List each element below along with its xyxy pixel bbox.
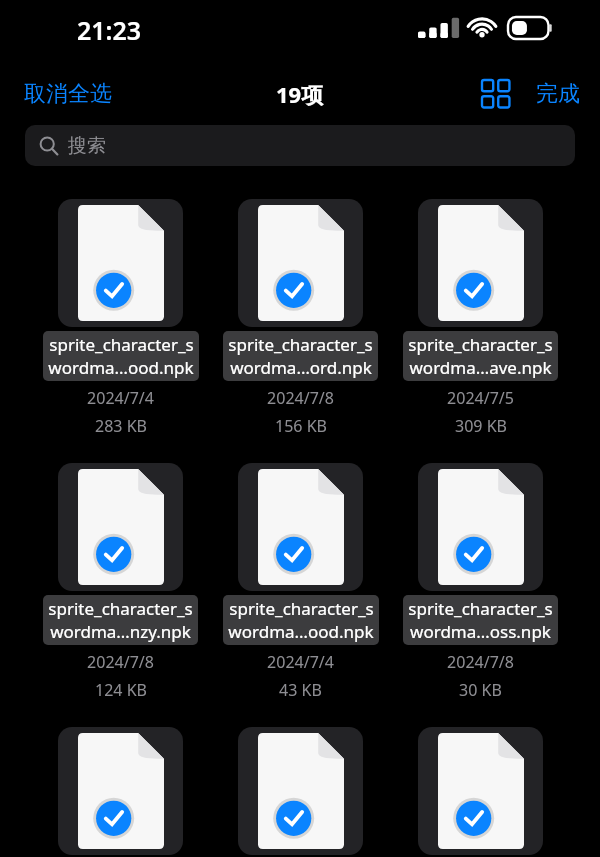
staticText: sprite_character_s xyxy=(48,597,193,620)
staticText: wordma…ood.npk xyxy=(228,620,374,643)
staticText: sprite_character_s xyxy=(49,333,194,356)
staticText: 21:23 xyxy=(77,13,142,47)
staticText: sprite_character_s xyxy=(408,597,553,620)
button[interactable]: 取消全选 xyxy=(14,74,122,114)
button[interactable]: Grid view xyxy=(476,74,516,114)
button[interactable]: 完成 xyxy=(530,74,586,114)
button[interactable]: sprite_character_s xyxy=(36,727,205,857)
button[interactable]: sprite_character_s xyxy=(396,727,565,857)
button[interactable]: sprite_character_s xyxy=(396,199,565,437)
staticText: 取消全选 xyxy=(24,80,112,108)
staticText: 完成 xyxy=(536,80,580,108)
button[interactable]: sprite_character_s xyxy=(36,463,205,701)
staticText: 43 KB xyxy=(279,679,322,701)
staticText: 124 KB xyxy=(95,679,147,701)
staticText: 2024/7/8 xyxy=(447,651,514,673)
staticText: wordma…ave.npk xyxy=(409,356,552,379)
button[interactable]: sprite_character_s xyxy=(216,463,385,701)
button[interactable]: sprite_character_s xyxy=(216,727,385,857)
staticText: 2024/7/5 xyxy=(447,387,514,409)
staticText: sprite_character_s xyxy=(408,333,553,356)
staticText: 2024/7/8 xyxy=(267,387,334,409)
staticText: sprite_character_s xyxy=(228,333,373,356)
button[interactable]: 搜索 xyxy=(25,125,575,166)
button[interactable]: sprite_character_s xyxy=(396,463,565,701)
staticText: 2024/7/4 xyxy=(87,387,154,409)
staticText: 30 KB xyxy=(459,679,502,701)
staticText: sprite_character_s xyxy=(229,597,374,620)
staticText: wordma…nzy.npk xyxy=(50,620,191,643)
staticText: 搜索 xyxy=(68,134,106,158)
staticText: 2024/7/4 xyxy=(267,651,334,673)
staticText: 283 KB xyxy=(95,415,147,437)
staticText: wordma…oss.npk xyxy=(410,620,551,643)
button[interactable]: sprite_character_s xyxy=(36,199,205,437)
button[interactable]: sprite_character_s xyxy=(216,199,385,437)
staticText: 19项 xyxy=(276,79,324,109)
staticText: 309 KB xyxy=(455,415,507,437)
staticText: wordma…ord.npk xyxy=(230,356,372,379)
staticText: 156 KB xyxy=(275,415,327,437)
staticText: 2024/7/8 xyxy=(87,651,154,673)
staticText: wordma…ood.npk xyxy=(48,356,194,379)
